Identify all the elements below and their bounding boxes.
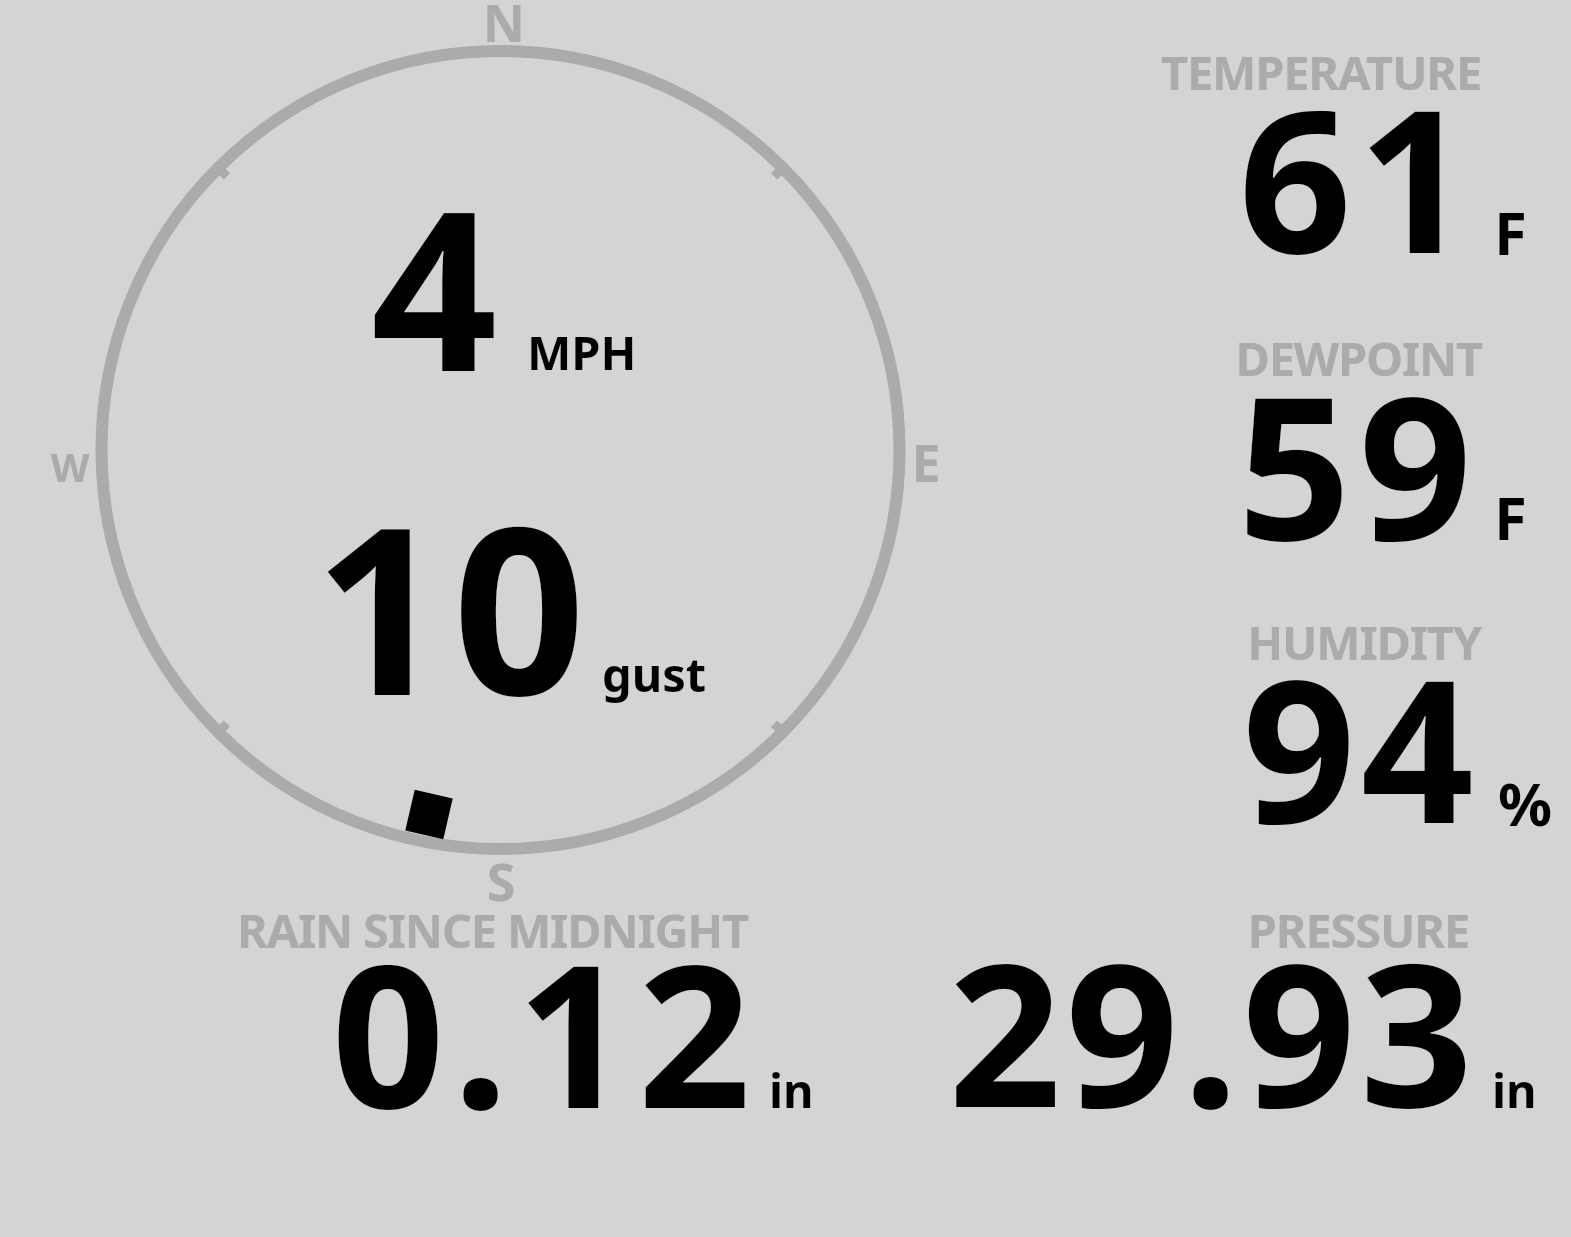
staticText: PRESSURE: [900, 898, 1469, 969]
button[interactable]: Wind direction compass: [80, 30, 920, 870]
staticText: DEWPOINT: [1000, 326, 1482, 397]
staticText: in: [1492, 1058, 1571, 1129]
staticText: 4: [371, 135, 771, 467]
button[interactable]: PRESSURE: [900, 897, 1550, 1126]
staticText: 29.93: [900, 895, 1477, 1124]
staticText: W: [10, 439, 130, 499]
button[interactable]: RAIN SINCE MIDNIGHT: [180, 897, 830, 1127]
staticText: 10: [314, 447, 814, 795]
staticText: HUMIDITY: [1000, 610, 1481, 681]
button[interactable]: HUMIDITY: [1000, 609, 1565, 842]
staticText: F: [1494, 476, 1571, 566]
staticText: E: [866, 426, 986, 504]
staticText: 59: [1000, 328, 1480, 562]
staticText: %: [1498, 762, 1571, 852]
staticText: MPH: [527, 320, 927, 391]
staticText: TEMPERATURE: [1000, 40, 1481, 111]
staticText: in: [769, 1058, 1069, 1129]
button[interactable]: TEMPERATURE: [1000, 39, 1545, 272]
staticText: 0.12: [180, 896, 759, 1126]
staticText: F: [1494, 191, 1571, 281]
staticText: gust: [602, 642, 1002, 713]
button[interactable]: DEWPOINT: [1000, 325, 1545, 559]
staticText: RAIN SINCE MIDNIGHT: [180, 898, 748, 969]
staticText: S: [441, 845, 561, 923]
staticText: N: [444, 0, 564, 64]
staticText: 61: [1000, 41, 1477, 274]
staticText: 94: [1000, 611, 1479, 844]
